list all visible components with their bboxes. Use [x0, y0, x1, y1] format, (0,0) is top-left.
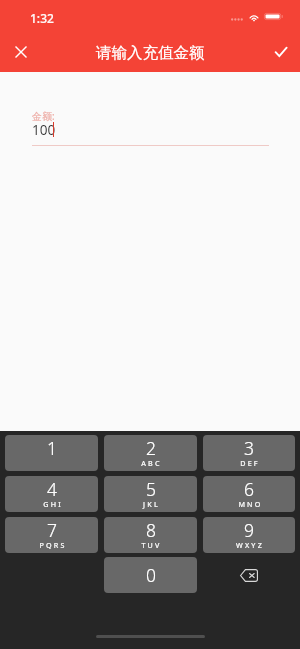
staticText: JKL	[143, 499, 160, 509]
button[interactable]: 5	[104, 476, 197, 512]
staticText: DEF	[240, 458, 260, 468]
button[interactable]: 0	[104, 557, 197, 593]
staticText: 8	[146, 518, 156, 542]
staticText: 金额:	[32, 109, 55, 123]
staticText: 4	[47, 477, 57, 501]
staticText: ABC	[141, 458, 162, 468]
staticText: 5	[146, 477, 156, 501]
staticText: 100	[32, 120, 56, 139]
staticText: GHI	[43, 499, 63, 509]
button[interactable]: 1	[5, 435, 98, 471]
staticText: TUV	[141, 540, 162, 550]
staticText: 请输入充值金额	[96, 43, 205, 63]
staticText: PQRS	[39, 540, 67, 550]
button[interactable]: 2	[104, 435, 197, 471]
button[interactable]: 3	[203, 435, 295, 471]
button[interactable]: 4	[5, 476, 98, 512]
button[interactable]: Backspace	[203, 557, 295, 593]
button[interactable]: Confirm	[261, 32, 300, 72]
staticText: MNO	[238, 499, 263, 509]
button[interactable]: 8	[104, 517, 197, 553]
staticText: 6	[244, 477, 254, 501]
staticText: 0	[146, 563, 156, 587]
staticText: 9	[244, 518, 254, 542]
button[interactable]: Close	[1, 32, 41, 72]
staticText: 1:32	[30, 10, 54, 26]
staticText: 1	[47, 436, 57, 460]
button[interactable]: 7	[5, 517, 98, 553]
staticText: 3	[244, 436, 254, 460]
staticText: 2	[146, 436, 156, 460]
staticText: WXYZ	[236, 540, 264, 550]
button[interactable]: 6	[203, 476, 295, 512]
staticText: 7	[47, 518, 57, 542]
button[interactable]: 9	[203, 517, 295, 553]
